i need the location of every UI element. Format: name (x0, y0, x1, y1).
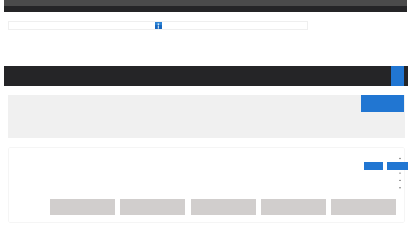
button[interactable]: Search field (8, 21, 308, 30)
button[interactable]: Toolbar (4, 66, 408, 86)
button[interactable]: Site icon (155, 22, 162, 29)
